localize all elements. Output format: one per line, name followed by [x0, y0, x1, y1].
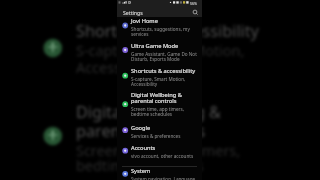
staticText: S-capture, Smart Motion, [76, 41, 245, 61]
button[interactable]: Google [117, 124, 202, 144]
button[interactable]: Jovi Home [117, 17, 202, 42]
staticText: Screen time, app timers, bedtime schedul… [131, 106, 199, 117]
staticText: Digital Wellbeing & [76, 101, 221, 123]
staticText: 56% [190, 1, 198, 6]
button[interactable]: Digital Wellbeing & parental controls [117, 91, 202, 124]
staticText: Ultra Game Mode [131, 42, 179, 50]
staticText: System navigation, Language [131, 176, 196, 180]
staticText: Jovi Home [131, 17, 158, 25]
staticText: S-capture, Smart Motion, Accessibility [131, 76, 199, 87]
staticText: Shortcuts, suggestions, my services [131, 26, 199, 37]
staticText: Services & preferences [131, 133, 181, 139]
button[interactable]: System [117, 167, 202, 180]
staticText: Screen time, app timers, [76, 141, 241, 161]
staticText: Settings [123, 9, 143, 16]
staticText: Digital Wellbeing & parental controls [131, 91, 199, 105]
staticText: Shortcuts & accessibility [131, 67, 196, 75]
staticText: System [131, 167, 151, 175]
staticText: bedtime schedules [76, 156, 204, 176]
staticText: Game Assistant, Game Do Not Disturb, Esp… [131, 51, 199, 62]
button[interactable]: Ultra Game Mode [117, 42, 202, 67]
button[interactable]: Search [192, 9, 199, 16]
staticText: Shortcuts & accessibility [76, 20, 259, 42]
staticText: Accounts [131, 144, 156, 152]
staticText: vivo account, other accounts [131, 153, 194, 159]
staticText: Accessibility [76, 58, 158, 78]
button[interactable]: Accounts [117, 144, 202, 166]
button[interactable]: Shortcuts & accessibility [117, 67, 202, 91]
staticText: parental controls [76, 120, 206, 142]
staticText: Google [131, 124, 151, 132]
